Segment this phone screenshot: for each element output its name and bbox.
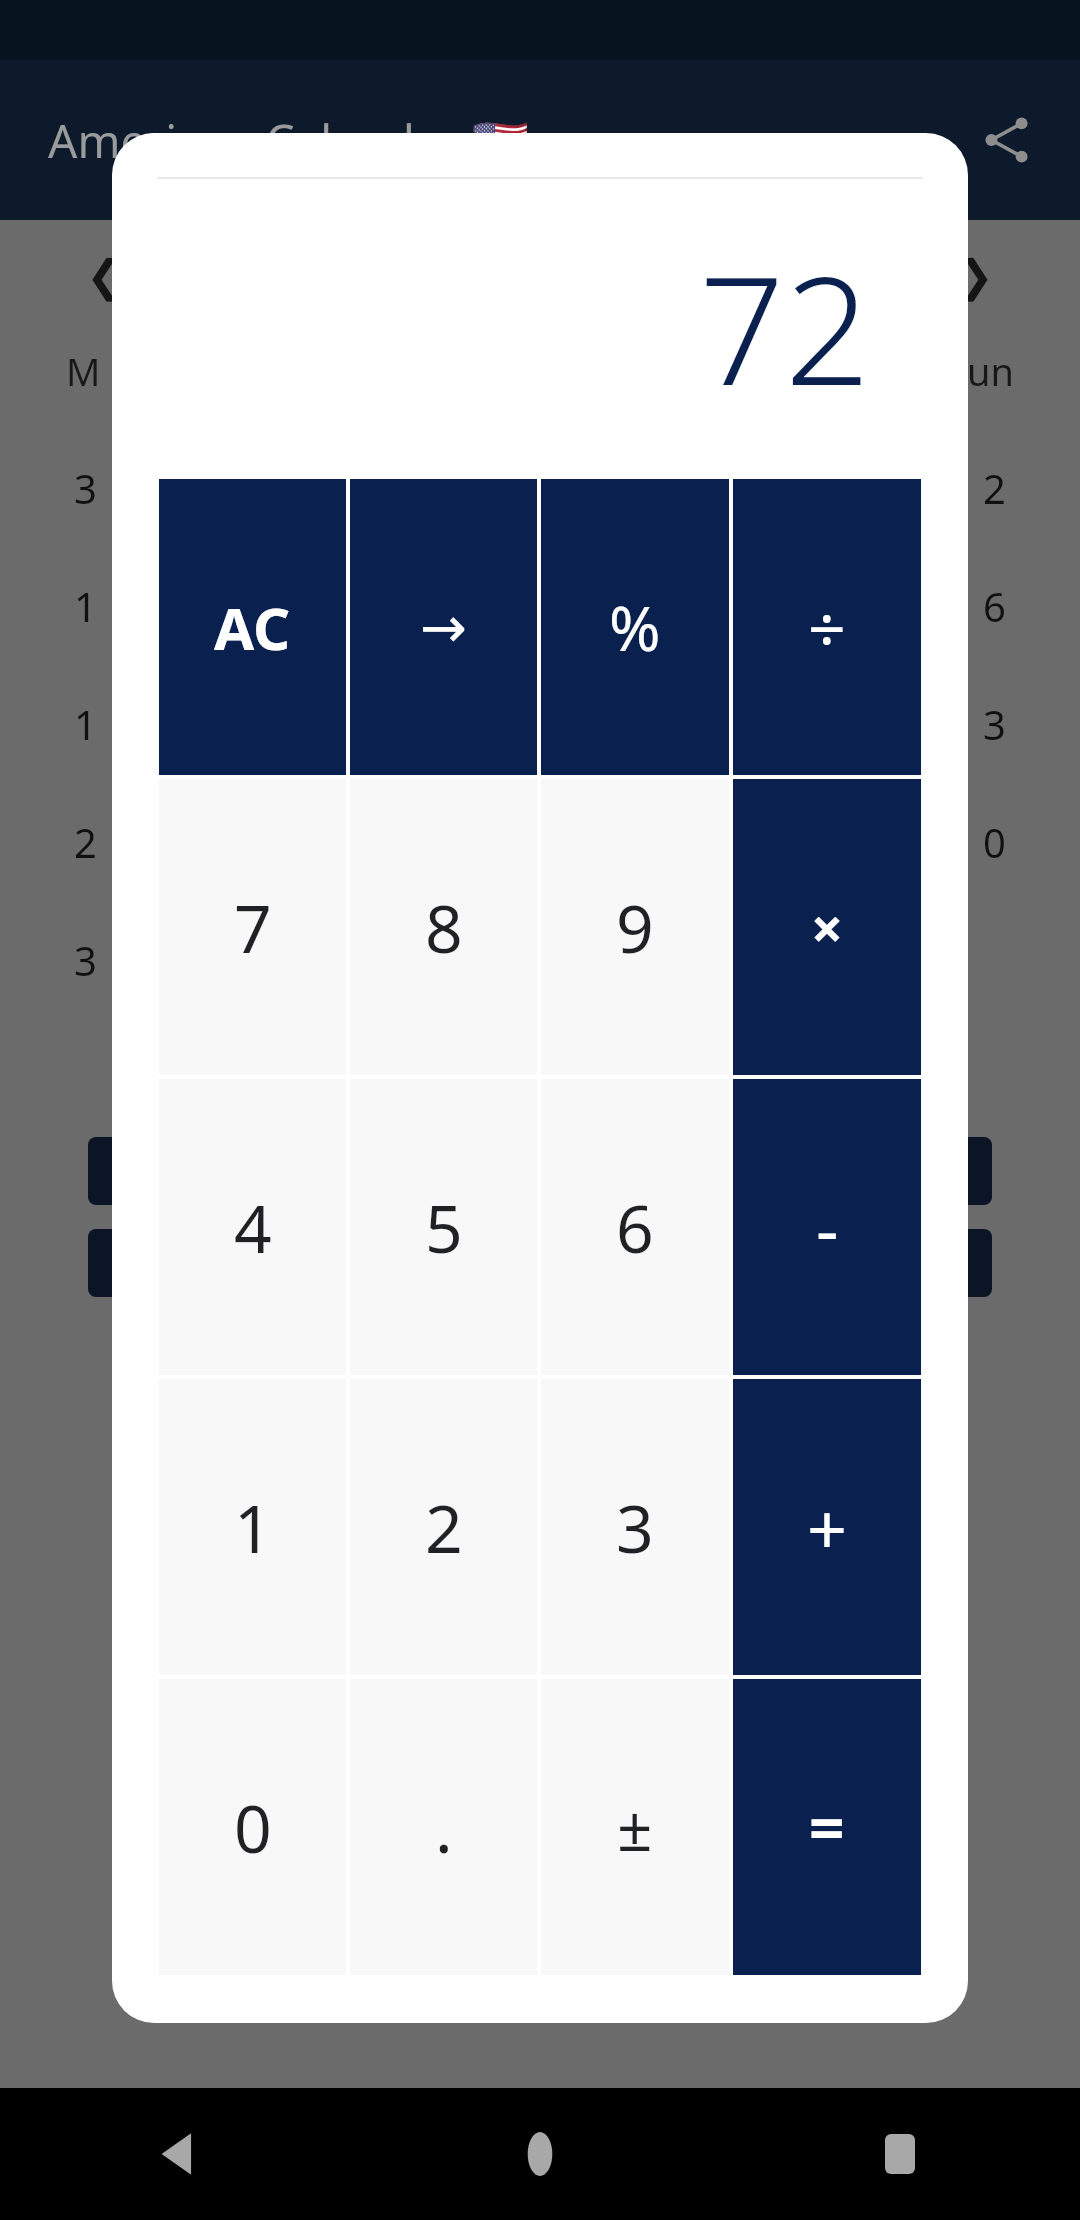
button[interactable]: 2: [350, 1379, 537, 1675]
staticText: %: [609, 585, 661, 669]
staticText: +: [807, 1480, 848, 1575]
button[interactable]: Equals: [733, 1679, 921, 1975]
staticText: 1: [74, 697, 97, 751]
staticText: 3: [74, 933, 97, 987]
button[interactable]: 5: [350, 1079, 537, 1375]
button[interactable]: Divide: [733, 479, 921, 775]
staticText: 6: [983, 579, 1006, 633]
button[interactable]: AC: [159, 479, 346, 775]
button[interactable]: 3: [541, 1379, 729, 1675]
staticText: 1: [234, 1482, 272, 1572]
button[interactable]: Toggle sign: [541, 1679, 729, 1975]
staticText: 5: [425, 1182, 463, 1272]
button[interactable]: 8: [350, 779, 537, 1075]
button[interactable]: Back: [0, 2088, 360, 2220]
button[interactable]: 1: [159, 1379, 346, 1675]
button[interactable]: 7: [159, 779, 346, 1075]
staticText: 3: [74, 461, 97, 515]
button[interactable]: Backspace: [350, 479, 537, 775]
button[interactable]: Percent: [541, 479, 729, 775]
staticText: 2: [74, 815, 97, 869]
staticText: 2: [983, 461, 1006, 515]
staticText: American Calendar 🇺🇸: [48, 109, 529, 172]
staticText: M: [66, 345, 101, 397]
button[interactable]: [88, 1229, 992, 1297]
staticText: 2: [425, 1482, 463, 1572]
button[interactable]: Home: [360, 2088, 720, 2220]
button[interactable]: 0: [159, 1679, 346, 1975]
staticText: ÷: [808, 582, 846, 672]
button[interactable]: 6: [541, 1079, 729, 1375]
button[interactable]: [88, 1137, 992, 1205]
staticText: 4: [234, 1182, 272, 1272]
staticText: 6: [616, 1182, 654, 1272]
button[interactable]: Plus: [733, 1379, 921, 1675]
button[interactable]: Recents: [720, 2088, 1080, 2220]
staticText: 8: [425, 882, 463, 972]
staticText: 7: [234, 882, 272, 972]
staticText: .: [435, 1782, 453, 1872]
staticText: ❮: [86, 250, 123, 301]
staticText: 1: [74, 579, 97, 633]
staticText: 3: [983, 697, 1006, 751]
staticText: ❯: [957, 250, 994, 301]
staticText: 0: [234, 1782, 272, 1872]
staticText: -: [816, 1180, 839, 1275]
staticText: =: [809, 1785, 845, 1869]
staticText: 72: [699, 225, 871, 429]
button[interactable]: Minus: [733, 1079, 921, 1375]
button[interactable]: 9: [541, 779, 729, 1075]
staticText: AC: [214, 588, 291, 667]
staticText: 9: [616, 882, 654, 972]
staticText: un: [967, 345, 1014, 397]
staticText: →: [420, 595, 467, 660]
staticText: 0: [983, 815, 1006, 869]
staticText: ×: [811, 889, 844, 965]
button[interactable]: 4: [159, 1079, 346, 1375]
button[interactable]: Share: [966, 100, 1046, 180]
staticText: 3: [616, 1482, 654, 1572]
staticText: ±: [617, 1785, 653, 1869]
button[interactable]: Multiply: [733, 779, 921, 1075]
button[interactable]: Decimal point: [350, 1679, 537, 1975]
